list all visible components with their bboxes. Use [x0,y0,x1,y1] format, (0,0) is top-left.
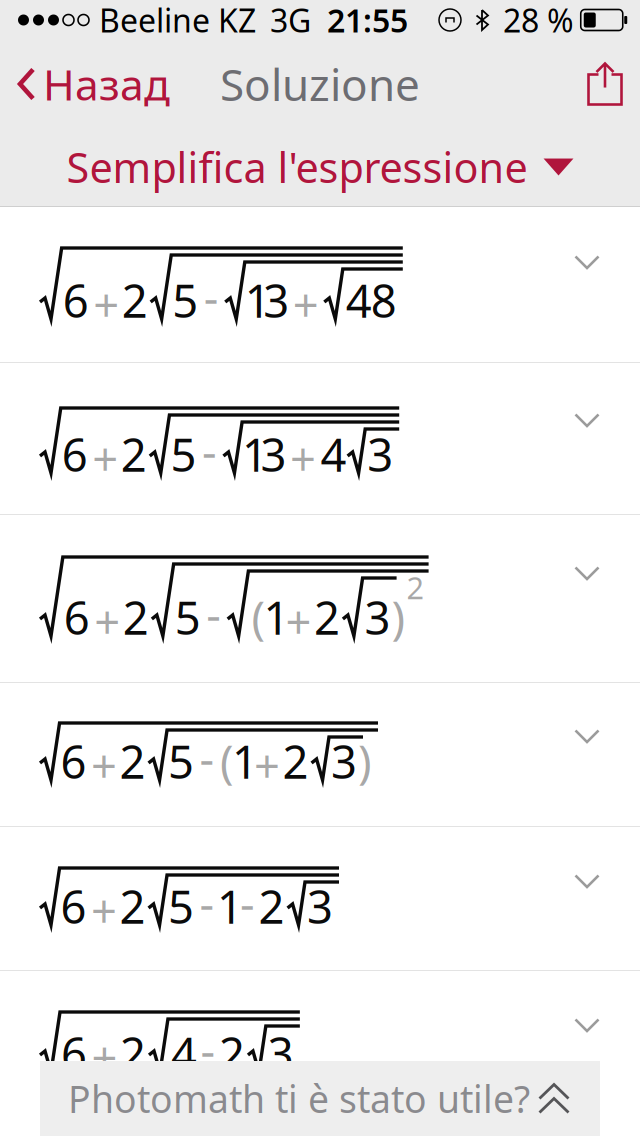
staticText: Beeline KZ [99,0,256,41]
staticText: 4 [171,1023,197,1083]
button[interactable]: 6 [0,683,640,826]
staticText: ) [392,587,406,647]
staticText: 1 [242,424,268,484]
staticText: 5 [172,270,198,330]
staticText: 4 [321,424,347,484]
staticText: 2 [219,1023,245,1083]
staticText: 3 [263,270,289,330]
staticText: - [200,1019,215,1079]
button[interactable]: 6 [0,515,640,682]
staticText: + [254,735,280,795]
staticText: ) [358,731,372,791]
button[interactable]: Share [570,55,640,112]
staticText: Semplifica l'espressione [66,140,527,194]
staticText: 3 [365,587,391,647]
staticText: + [285,591,311,651]
staticText: 2 [123,587,149,647]
staticText: 6 [61,1023,87,1083]
staticText: 3 [268,1023,294,1083]
staticText: 5 [170,424,196,484]
staticText: - [200,727,215,787]
staticText: - [200,872,215,932]
staticText: 5 [168,731,194,791]
staticText: 4 [346,270,372,330]
staticText: 2 [122,270,148,330]
staticText: Назад [43,56,170,112]
button[interactable]: Semplifica l'espressione [0,128,640,206]
staticText: 3 [331,731,357,791]
button[interactable]: 6 [0,363,640,514]
staticText: 2 [259,876,285,936]
staticText: 2 [407,567,425,608]
staticText: 5 [168,876,194,936]
button[interactable]: 6 [0,971,640,1128]
staticText: 2 [119,731,145,791]
staticText: 1 [245,270,271,330]
staticText: + [91,735,117,795]
staticText: 28 % [503,0,574,41]
staticText: 2 [121,424,147,484]
staticText: 6 [60,876,86,936]
staticText: 2 [119,876,145,936]
staticText: + [293,274,319,334]
staticText: - [202,420,217,480]
staticText: 6 [62,424,88,484]
staticText: 1 [263,587,289,647]
staticText: 3 [367,424,393,484]
staticText: 6 [64,587,90,647]
button[interactable]: Photomath ti è stato utile? [40,1061,600,1136]
staticText: - [204,266,219,326]
staticText: 2 [120,1023,146,1083]
staticText: + [93,274,119,334]
staticText: + [91,880,117,940]
staticText: + [91,1027,117,1087]
staticText: 1 [217,876,243,936]
staticText: 3G [270,0,311,41]
staticText: - [240,872,255,932]
staticText: ( [220,731,234,791]
staticText: 1 [232,731,258,791]
staticText: + [290,428,316,488]
staticText: 2 [283,731,309,791]
staticText: + [94,591,120,651]
staticText: 6 [63,270,89,330]
staticText: 21:55 [327,0,408,41]
staticText: ( [251,587,265,647]
staticText: 6 [60,731,86,791]
staticText: + [92,428,118,488]
staticText: Photomath ti è stato utile? [68,1074,530,1123]
staticText: Soluzione [220,55,420,113]
staticText: 3 [307,876,333,936]
staticText: 3 [261,424,287,484]
button[interactable]: Назад [0,48,170,120]
staticText: 2 [314,587,340,647]
button[interactable]: 6 [0,827,640,970]
staticText: - [206,583,221,643]
staticText: 5 [175,587,201,647]
staticText: 8 [371,270,397,330]
button[interactable]: 6 [0,207,640,362]
